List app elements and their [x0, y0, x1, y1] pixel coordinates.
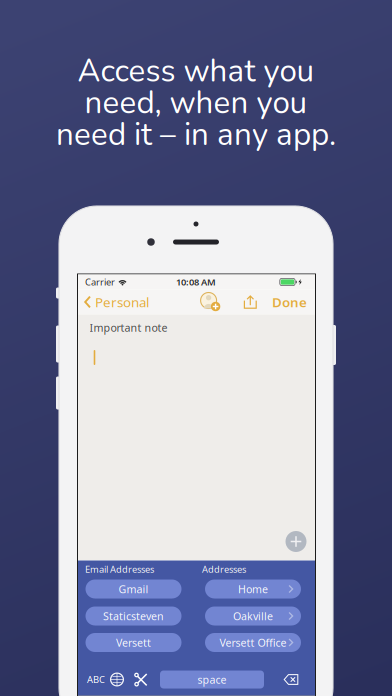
staticText: Home [238, 582, 268, 596]
button[interactable]: Done [272, 289, 307, 314]
staticText: space [197, 672, 226, 687]
staticText: Done [272, 293, 307, 311]
staticText: Staticsteven [103, 609, 164, 623]
staticText: Oakville [233, 609, 273, 623]
staticText: Important note [89, 320, 167, 335]
button[interactable]: Cut [131, 669, 151, 689]
staticText: Email Addresses [85, 563, 154, 575]
button[interactable]: Home [205, 579, 301, 598]
button[interactable]: Switch keyboard [107, 669, 127, 689]
button[interactable]: Personal [78, 289, 153, 314]
button[interactable]: Add person [201, 292, 221, 311]
staticText: need, when you [84, 82, 307, 124]
button[interactable]: ABC [83, 669, 109, 689]
staticText: ABC [87, 673, 105, 686]
button[interactable]: Delete [281, 669, 301, 689]
button[interactable]: Share [244, 292, 257, 311]
button[interactable]: New note [285, 531, 306, 552]
staticText: Gmail [118, 582, 148, 596]
button[interactable]: space [160, 670, 264, 688]
staticText: Carrier [85, 276, 115, 288]
staticText: Access what you [77, 50, 314, 93]
button[interactable]: Oakville [205, 606, 301, 625]
button[interactable]: Versett Office [205, 633, 301, 652]
staticText: Personal [95, 293, 149, 311]
button[interactable]: Gmail [85, 579, 181, 598]
button[interactable]: Staticsteven [85, 606, 181, 625]
staticText: 10:08 AM [176, 276, 216, 288]
staticText: need it – in any app. [56, 113, 336, 156]
staticText: Versett [116, 635, 151, 650]
staticText: Addresses [202, 563, 246, 575]
button[interactable]: Versett [85, 633, 181, 652]
staticText: Versett Office [219, 635, 286, 650]
